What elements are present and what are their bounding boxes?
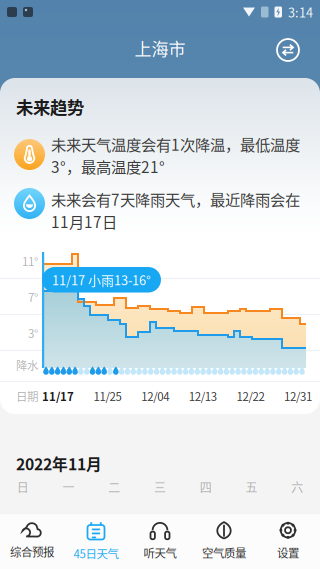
staticText: 降水 xyxy=(16,357,38,373)
staticText: 7° xyxy=(28,289,38,305)
staticText: 未来会有7天降雨天气，最近降雨会在11月17日 xyxy=(51,188,300,232)
staticText: 12/22 xyxy=(236,388,264,404)
button[interactable]: 45日天气 xyxy=(64,513,128,569)
staticText: 12/31 xyxy=(284,388,312,404)
button[interactable]: 听天气 xyxy=(128,513,192,569)
staticText: 三 xyxy=(154,478,166,496)
staticText: 未来天气温度会有1次降温，最低温度3°，最高温度21° xyxy=(51,133,300,177)
button[interactable]: 设置 xyxy=(256,513,320,569)
staticText: 12/04 xyxy=(141,388,169,404)
staticText: 二 xyxy=(108,478,120,496)
button[interactable]: 切换城市 xyxy=(268,30,308,70)
staticText: 3° xyxy=(28,325,38,341)
staticText: 日 xyxy=(17,478,29,496)
staticText: 空气质量 xyxy=(202,544,246,561)
staticText: 六 xyxy=(291,478,303,496)
staticText: 12/13 xyxy=(189,388,217,404)
staticText: 11° xyxy=(22,253,38,269)
staticText: 听天气 xyxy=(143,544,176,561)
staticText: 设置 xyxy=(277,544,299,561)
staticText: 一 xyxy=(63,478,75,496)
staticText: 11/17 xyxy=(42,388,74,404)
staticText: 四 xyxy=(200,478,212,496)
staticText: 综合预报 xyxy=(10,543,54,560)
staticText: 3:14 xyxy=(288,3,313,21)
button[interactable]: 空气质量 xyxy=(192,513,256,569)
staticText: 日期 xyxy=(16,388,38,404)
staticText: 未来趋势 xyxy=(16,94,84,119)
button[interactable]: 综合预报 xyxy=(0,513,64,569)
staticText: 2022年11月 xyxy=(16,452,102,475)
staticText: 11/17 小雨13-16° xyxy=(52,270,151,289)
staticText: 45日天气 xyxy=(73,545,118,561)
staticText: 11/25 xyxy=(94,388,122,404)
staticText: 上海市 xyxy=(134,36,185,60)
staticText: 五 xyxy=(245,478,257,496)
